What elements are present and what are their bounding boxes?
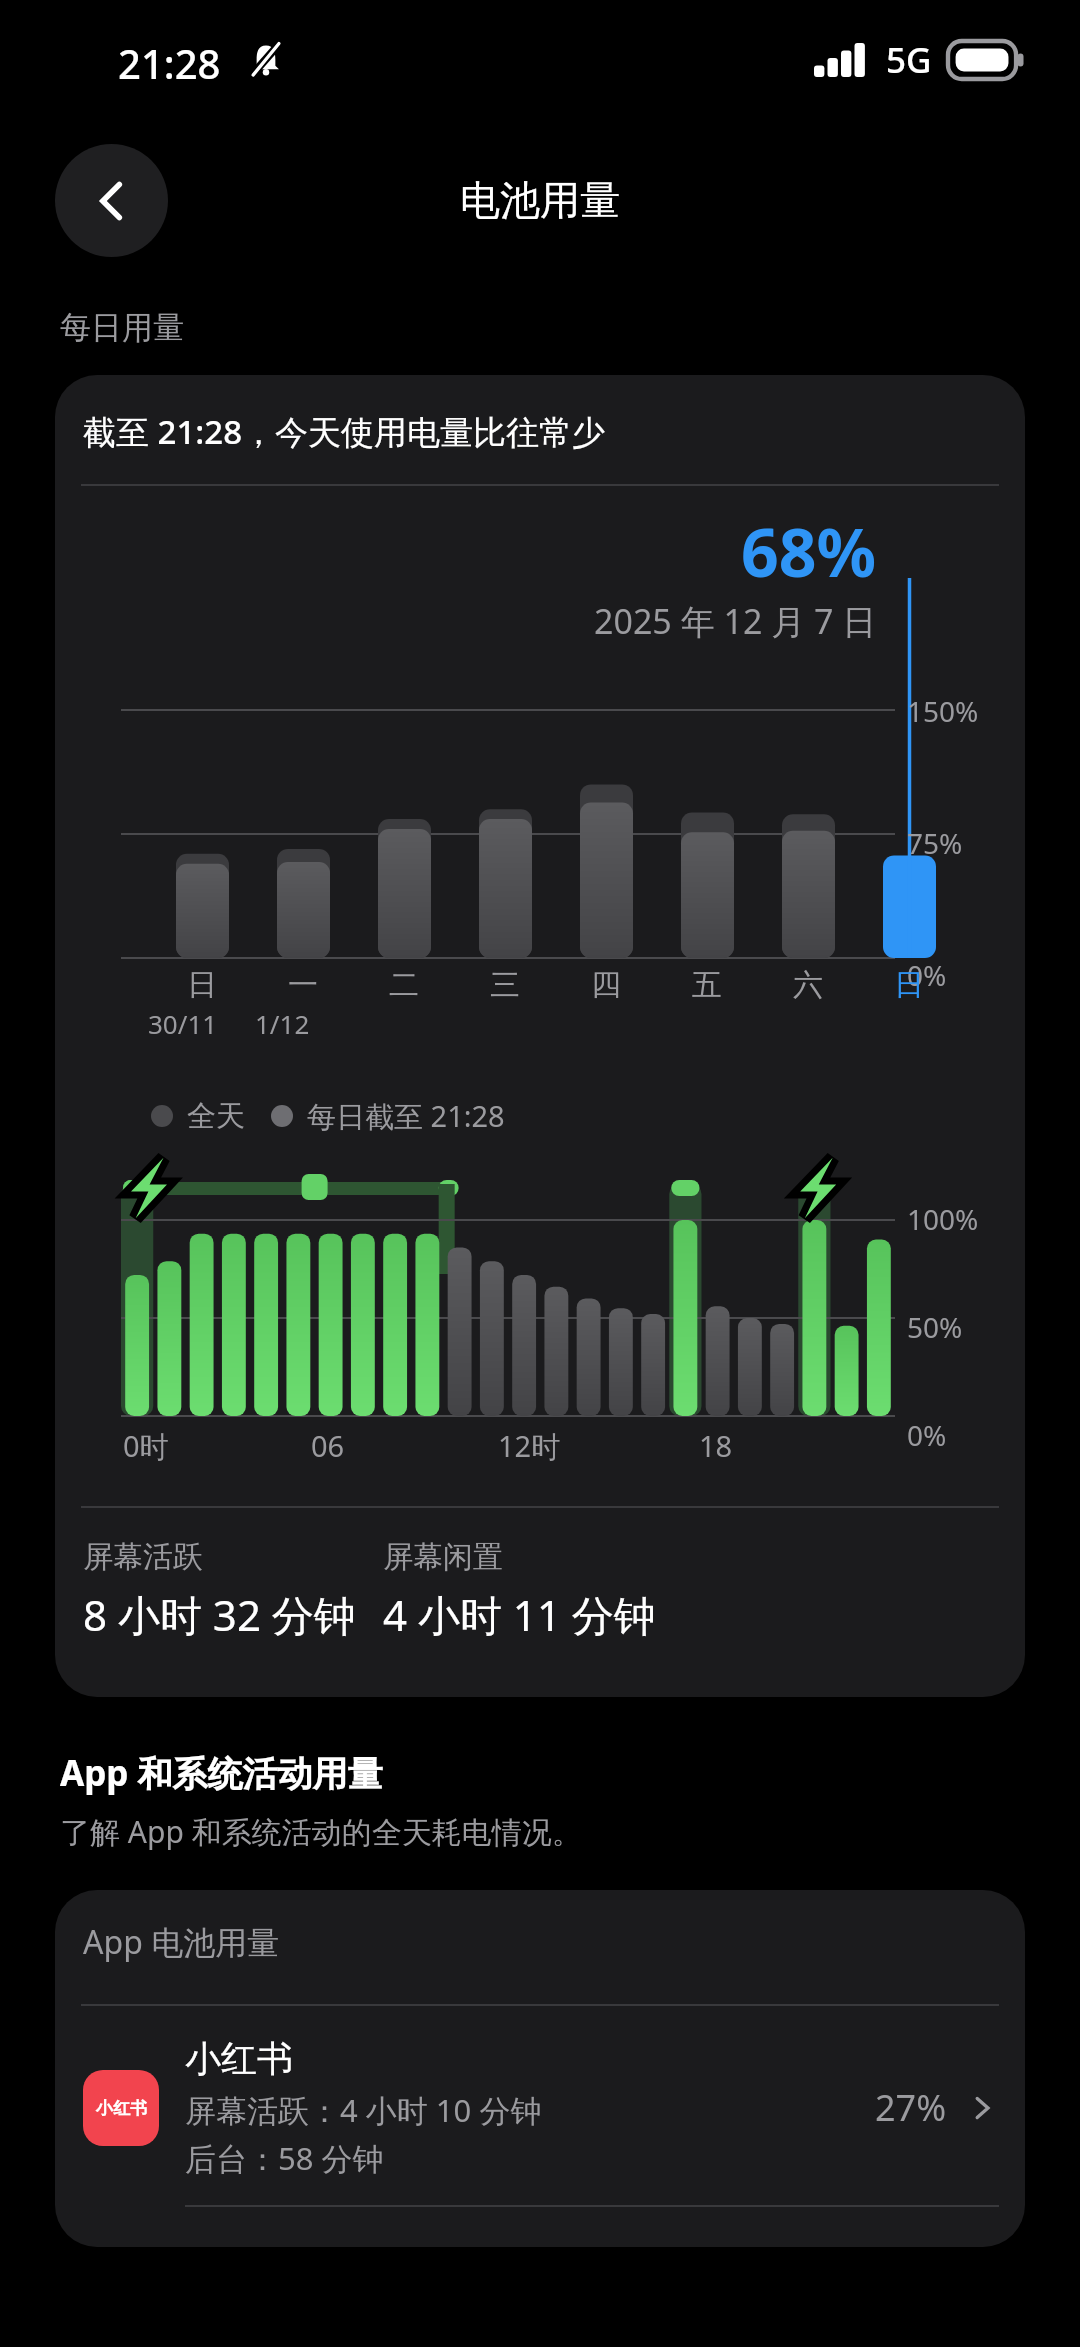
staticText: 100% [907, 1200, 979, 1238]
staticText: 四 [591, 966, 621, 1004]
staticText: 截至 21:28，今天使用电量比往常少 [83, 409, 606, 454]
staticText: 21:28 [118, 36, 221, 90]
staticText: 0% [907, 1416, 947, 1454]
staticText: 每日用量 [60, 308, 184, 347]
staticText: 27% [875, 2083, 947, 2132]
staticText: 屏幕活跃 [83, 1538, 203, 1576]
staticText: 12时 [498, 1426, 561, 1466]
staticText: App 电池用量 [83, 1920, 280, 1964]
staticText: 六 [793, 966, 823, 1004]
staticText: 30/11 [148, 1006, 218, 1041]
staticText: 二 [389, 966, 419, 1004]
staticText: 三 [490, 966, 520, 1004]
staticText: 后台：58 分钟 [185, 2137, 384, 2179]
staticText: 2025 年 12 月 7 日 [594, 598, 877, 644]
staticText: 全天 [187, 1098, 245, 1135]
staticText: 5G [886, 36, 932, 84]
button[interactable]: 返回 [55, 144, 168, 257]
staticText: 一 [288, 966, 318, 1004]
button[interactable]: 小红书 [55, 2006, 1025, 2205]
staticText: 0% [907, 956, 947, 994]
staticText: 8 小时 32 分钟 [83, 1586, 356, 1643]
staticText: 电池用量 [460, 175, 620, 225]
staticText: 日 [894, 966, 924, 1004]
staticText: 18 [699, 1426, 733, 1465]
staticText: 小红书 [96, 2098, 147, 2119]
staticText: 每日截至 21:28 [307, 1096, 505, 1136]
staticText: 75% [907, 824, 963, 862]
staticText: 屏幕活跃：4 小时 10 分钟 [185, 2089, 542, 2131]
staticText: 五 [692, 966, 722, 1004]
staticText: 小红书 [185, 2036, 293, 2081]
staticText: 日 [187, 966, 217, 1004]
staticText: 4 小时 11 分钟 [383, 1586, 656, 1643]
staticText: 50% [907, 1308, 963, 1346]
staticText: 0时 [123, 1426, 169, 1466]
staticText: App 和系统活动用量 [60, 1749, 383, 1797]
staticText: 06 [311, 1426, 345, 1465]
staticText: 68% [741, 506, 877, 596]
staticText: 屏幕闲置 [383, 1538, 503, 1576]
staticText: 1/12 [255, 1006, 310, 1041]
staticText: 了解 App 和系统活动的全天耗电情况。 [60, 1811, 582, 1852]
staticText: 150% [907, 692, 979, 730]
